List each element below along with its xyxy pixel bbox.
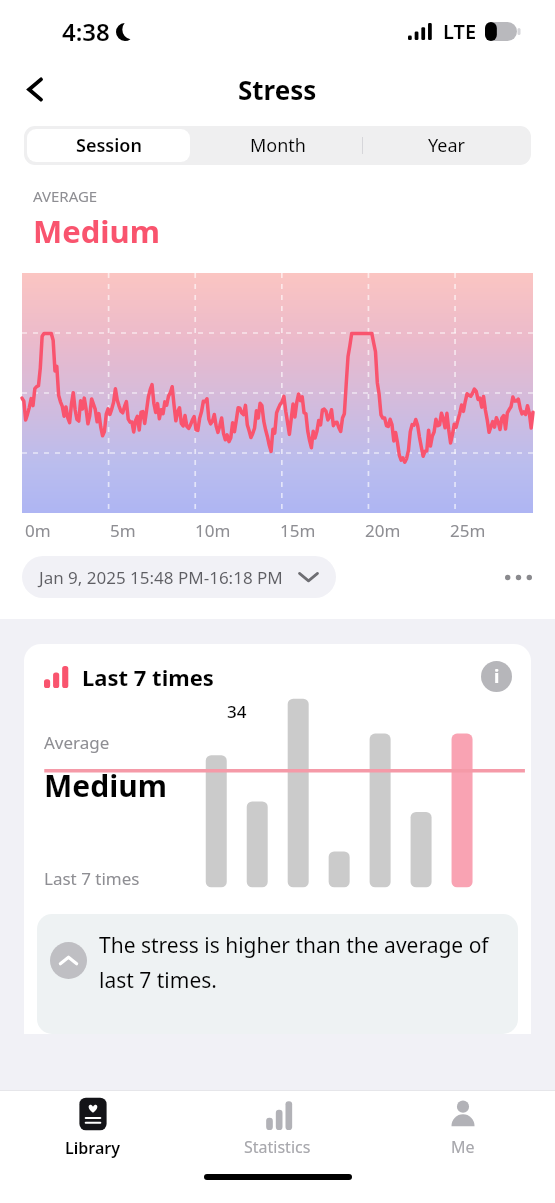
staticText: 4:38	[62, 15, 110, 48]
staticText: 34	[227, 700, 247, 723]
staticText: The stress is higher than the average of…	[99, 931, 504, 995]
staticText: i	[494, 664, 500, 689]
button[interactable]: Info	[481, 661, 512, 692]
button[interactable]: Session	[27, 129, 190, 162]
staticText: Medium	[33, 210, 160, 252]
button[interactable]: Month	[193, 126, 362, 165]
staticText: Library	[65, 1137, 120, 1159]
button[interactable]: Jan 9, 2025 15:48 PM-16:18 PM	[22, 556, 336, 598]
staticText: AVERAGE	[33, 186, 98, 206]
staticText: 0m	[25, 519, 51, 542]
staticText: Stress	[238, 72, 317, 107]
button[interactable]: Year	[362, 126, 531, 165]
staticText: 15m	[280, 519, 316, 542]
staticText: Last 7 times	[82, 662, 214, 692]
staticText: Month	[250, 133, 306, 158]
staticText: Average	[44, 731, 110, 754]
staticText: Year	[428, 133, 465, 158]
staticText: LTE	[443, 18, 477, 45]
staticText: Medium	[44, 765, 167, 806]
button[interactable]: Library	[0, 1091, 185, 1165]
staticText: 5m	[110, 519, 136, 542]
staticText: Jan 9, 2025 15:48 PM-16:18 PM	[39, 566, 283, 589]
staticText: 20m	[365, 519, 401, 542]
staticText: Me	[451, 1136, 475, 1158]
button[interactable]: Me	[370, 1091, 555, 1165]
staticText: Last 7 times	[44, 867, 140, 890]
button[interactable]: More options	[497, 556, 539, 598]
staticText: 25m	[450, 519, 486, 542]
button[interactable]: Statistics	[185, 1091, 370, 1165]
staticText: Session	[76, 133, 142, 158]
staticText: 10m	[195, 519, 231, 542]
staticText: Statistics	[244, 1136, 311, 1158]
button[interactable]: Back	[12, 66, 58, 112]
